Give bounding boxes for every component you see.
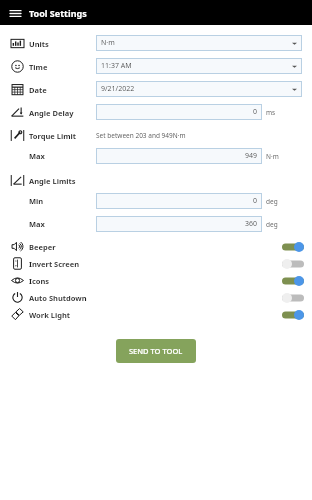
staticText: Work Light	[29, 310, 71, 320]
staticText: Time	[29, 62, 48, 72]
staticText: Min	[29, 196, 44, 206]
staticText: ms	[266, 108, 276, 117]
staticText: Invert Screen	[29, 259, 80, 269]
button[interactable]: Beeper	[0, 238, 312, 255]
staticText: 360	[245, 219, 258, 229]
staticText: N·m	[101, 38, 115, 48]
button[interactable]: Invert Screen	[0, 255, 312, 272]
button[interactable]: 360	[96, 216, 262, 232]
button[interactable]: 0	[96, 193, 262, 209]
staticText: Angle Limits	[29, 176, 76, 186]
staticText: Set between 203 and 949N·m	[96, 131, 186, 140]
staticText: Angle Delay	[29, 108, 74, 118]
staticText: 11:37 AM	[101, 61, 132, 71]
button[interactable]: Auto Shutdown	[0, 289, 312, 306]
staticText: deg	[266, 197, 278, 206]
button[interactable]: Work Light	[0, 306, 312, 323]
button[interactable]: 9/21/2022	[96, 81, 302, 97]
staticText: 9/21/2022	[101, 84, 135, 94]
staticText: Torque Limit	[29, 131, 76, 141]
staticText: Auto Shutdown	[29, 293, 87, 303]
staticText: N·m	[266, 152, 279, 161]
button[interactable]: 11:37 AM	[96, 58, 302, 74]
button[interactable]: 949	[96, 148, 262, 164]
staticText: Beeper	[29, 242, 56, 252]
staticText: 0	[253, 196, 258, 206]
staticText: Date	[29, 85, 47, 95]
staticText: 949	[245, 151, 258, 161]
button[interactable]: Icons	[0, 272, 312, 289]
staticText: Max	[29, 151, 45, 161]
button[interactable]: SEND TO TOOL	[116, 339, 196, 363]
button[interactable]: 0	[96, 104, 262, 120]
staticText: SEND TO TOOL	[129, 346, 183, 356]
staticText: Icons	[29, 276, 50, 286]
staticText: Max	[29, 219, 45, 229]
button[interactable]: N·m	[96, 35, 302, 51]
staticText: Tool Settings	[29, 7, 87, 19]
staticText: deg	[266, 220, 278, 229]
staticText: 0	[253, 107, 258, 117]
staticText: Units	[29, 39, 49, 49]
button[interactable]: Menu	[5, 3, 25, 23]
